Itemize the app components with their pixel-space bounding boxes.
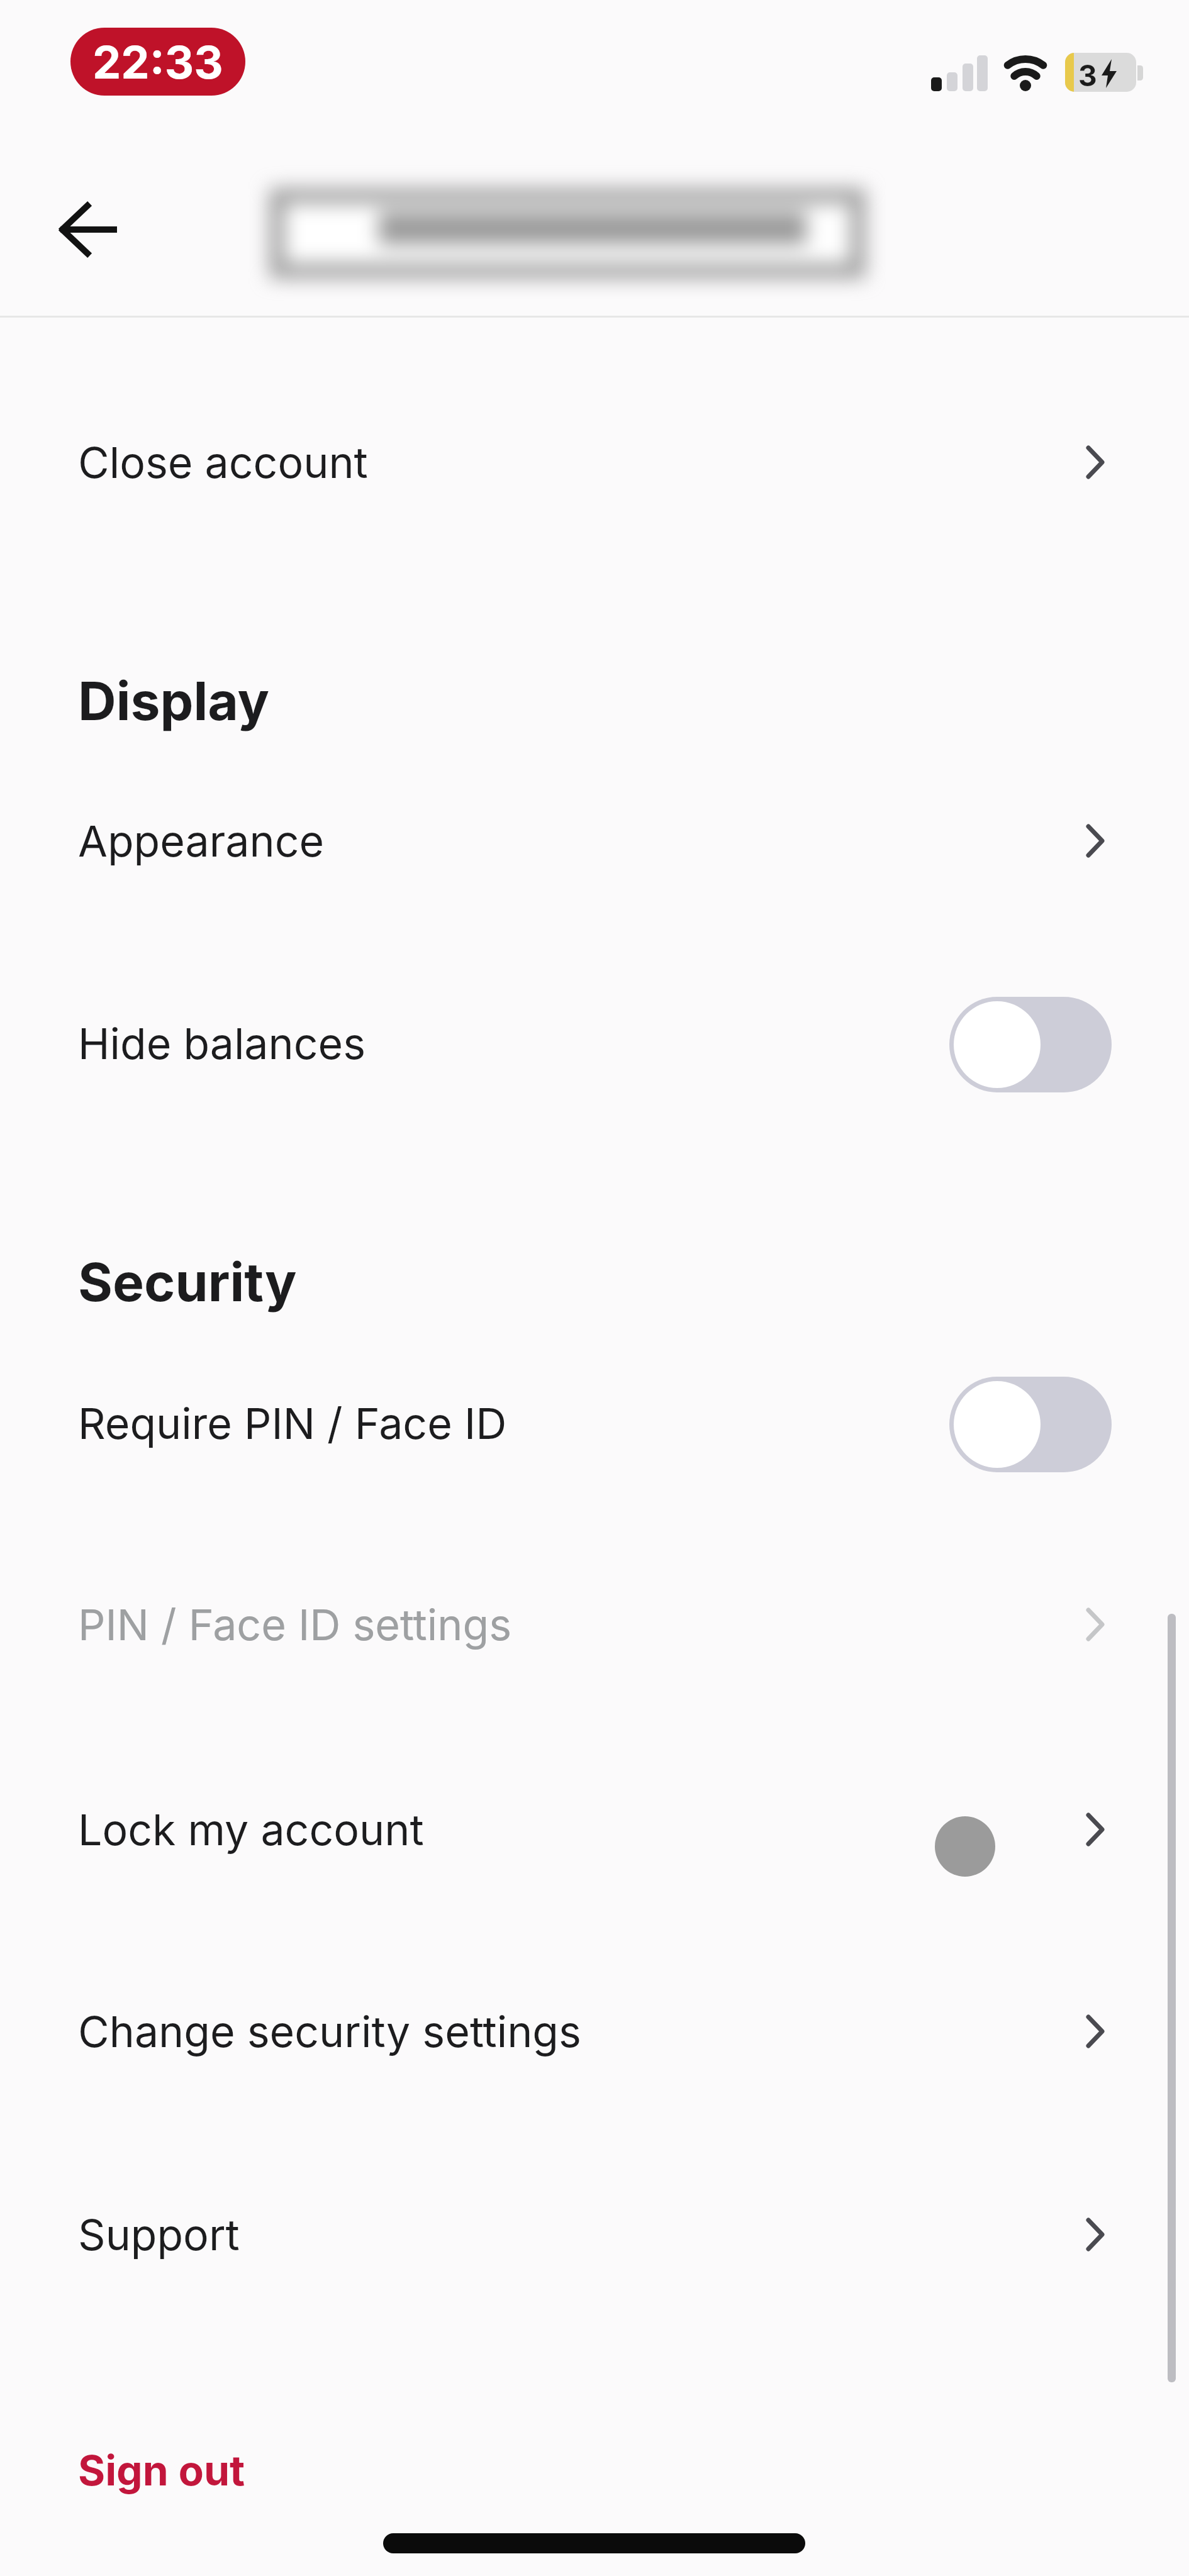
button[interactable]: Close account [0, 406, 1189, 519]
staticText: Sign out [78, 2445, 245, 2495]
staticText: Close account [78, 436, 368, 488]
button[interactable] [38, 182, 132, 277]
button[interactable]: Appearance [0, 784, 1189, 897]
staticText: Hide balances [78, 1018, 366, 1069]
staticText: Support [78, 2209, 240, 2260]
staticText: 3 [1078, 58, 1097, 93]
staticText: Change security settings [78, 2006, 581, 2057]
staticText: Display [78, 669, 270, 733]
staticText: Lock my account [78, 1804, 424, 1855]
button[interactable]: Support [0, 2178, 1189, 2291]
button[interactable]: Sign out [0, 2414, 1189, 2527]
staticText: Appearance [78, 815, 325, 867]
staticText: PIN / Face ID settings [78, 1599, 512, 1650]
staticText: 22:33 [92, 35, 223, 89]
button[interactable]: Lock my account [0, 1773, 1189, 1886]
button[interactable]: PIN / Face ID settings [0, 1568, 1189, 1681]
staticText: Security [78, 1250, 297, 1314]
staticText: Require PIN / Face ID [78, 1397, 507, 1449]
button[interactable]: Require PIN / Face ID [0, 1367, 1189, 1480]
button[interactable]: Hide balances [0, 987, 1189, 1100]
button[interactable]: Change security settings [0, 1975, 1189, 2088]
